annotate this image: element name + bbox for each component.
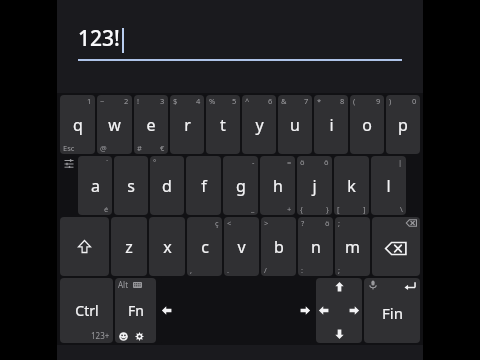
button[interactable]: = bbox=[260, 156, 295, 215]
staticText: ( bbox=[353, 96, 356, 106]
staticText: ; bbox=[338, 265, 341, 275]
staticText: c bbox=[201, 236, 209, 258]
staticText: g bbox=[236, 175, 246, 197]
staticText: : bbox=[301, 265, 304, 275]
staticText: ö bbox=[300, 157, 305, 167]
staticText: y bbox=[255, 114, 264, 136]
staticText: < bbox=[227, 218, 232, 228]
staticText: - bbox=[252, 157, 255, 167]
button[interactable]: - bbox=[223, 156, 258, 215]
staticText: [ bbox=[337, 204, 340, 214]
button[interactable]: Backspace bbox=[372, 217, 420, 276]
staticText: u bbox=[290, 114, 300, 136]
staticText: Fn bbox=[128, 301, 144, 320]
staticText: k bbox=[347, 175, 356, 197]
staticText: ? bbox=[301, 218, 305, 228]
staticText: \ bbox=[400, 204, 403, 214]
staticText: d bbox=[162, 175, 172, 197]
button[interactable]: [ bbox=[334, 156, 369, 215]
staticText: 0 bbox=[412, 96, 417, 106]
staticText: x bbox=[163, 236, 172, 258]
staticText: 3 bbox=[160, 96, 165, 106]
staticText: , bbox=[190, 265, 193, 275]
staticText: _ bbox=[251, 204, 255, 214]
staticText: > bbox=[264, 218, 269, 228]
button[interactable]: Fin bbox=[364, 278, 420, 343]
staticText: o bbox=[362, 114, 372, 136]
button[interactable]: Arrow keys bbox=[316, 278, 362, 343]
staticText: Fin bbox=[382, 303, 403, 323]
staticText: n bbox=[311, 236, 321, 258]
staticText: s bbox=[127, 175, 135, 197]
button[interactable]: ö bbox=[297, 156, 332, 215]
staticText: f bbox=[201, 175, 207, 197]
staticText: ö bbox=[325, 218, 330, 228]
staticText: Esc bbox=[63, 143, 75, 153]
staticText: l bbox=[386, 175, 391, 197]
staticText: e bbox=[146, 114, 156, 136]
staticText: p bbox=[398, 114, 408, 136]
staticText: v bbox=[237, 236, 246, 258]
staticText: 1 bbox=[87, 96, 92, 106]
staticText: ° bbox=[153, 157, 157, 167]
button[interactable]: ç bbox=[187, 217, 222, 276]
button[interactable]: ? bbox=[298, 217, 333, 276]
button[interactable]: Ctrl bbox=[60, 278, 113, 343]
button[interactable]: < bbox=[224, 217, 259, 276]
staticText: 6 bbox=[268, 96, 273, 106]
staticText: Ctrl bbox=[75, 301, 99, 320]
staticText: ! bbox=[137, 96, 140, 106]
button[interactable]: f bbox=[186, 156, 221, 215]
staticText: # bbox=[137, 143, 142, 153]
staticText: Alt bbox=[118, 279, 129, 290]
staticText: € bbox=[160, 143, 165, 153]
button[interactable]: $ bbox=[170, 95, 204, 154]
staticText: 9 bbox=[376, 96, 381, 106]
button[interactable]: ° bbox=[150, 156, 184, 215]
staticText: t bbox=[220, 114, 226, 136]
staticText: i bbox=[329, 114, 334, 136]
button[interactable]: > bbox=[261, 217, 296, 276]
button[interactable]: Alt bbox=[115, 278, 156, 343]
staticText: ` bbox=[106, 157, 109, 167]
button[interactable]: s bbox=[114, 156, 148, 215]
button[interactable]: ; bbox=[335, 217, 370, 276]
staticText: 123+ bbox=[91, 330, 110, 341]
staticText: 123! bbox=[78, 24, 120, 53]
staticText: m bbox=[345, 236, 360, 258]
staticText: { bbox=[300, 204, 303, 214]
button[interactable]: * bbox=[314, 95, 348, 154]
staticText: z bbox=[125, 236, 133, 258]
button[interactable]: z bbox=[111, 217, 147, 276]
button[interactable]: Space bbox=[158, 278, 314, 343]
button[interactable]: & bbox=[278, 95, 312, 154]
button[interactable]: 1 bbox=[60, 95, 95, 154]
button[interactable]: ^ bbox=[242, 95, 276, 154]
button[interactable]: ~ bbox=[97, 95, 132, 154]
staticText: ) bbox=[389, 96, 392, 106]
button[interactable]: ! bbox=[134, 95, 168, 154]
staticText: ] bbox=[363, 204, 366, 214]
button[interactable]: x bbox=[149, 217, 185, 276]
staticText: ô bbox=[324, 157, 329, 167]
staticText: $ bbox=[173, 96, 178, 106]
button[interactable]: ( bbox=[350, 95, 384, 154]
staticText: q bbox=[73, 114, 83, 136]
staticText: 8 bbox=[340, 96, 345, 106]
staticText: @ bbox=[100, 143, 107, 153]
staticText: r bbox=[184, 114, 191, 136]
staticText: ^ bbox=[245, 96, 250, 106]
button[interactable]: ` bbox=[78, 156, 112, 215]
button[interactable]: ) bbox=[386, 95, 420, 154]
button[interactable]: Shift bbox=[60, 217, 109, 276]
staticText: 4 bbox=[196, 96, 201, 106]
staticText: 7 bbox=[304, 96, 309, 106]
staticText: j bbox=[312, 175, 317, 197]
staticText: ç bbox=[215, 218, 219, 228]
button[interactable]: % bbox=[206, 95, 240, 154]
staticText: = bbox=[287, 157, 292, 167]
staticText: a bbox=[91, 175, 100, 197]
staticText: . bbox=[227, 265, 230, 275]
staticText: & bbox=[281, 96, 287, 106]
button[interactable]: | bbox=[371, 156, 406, 215]
